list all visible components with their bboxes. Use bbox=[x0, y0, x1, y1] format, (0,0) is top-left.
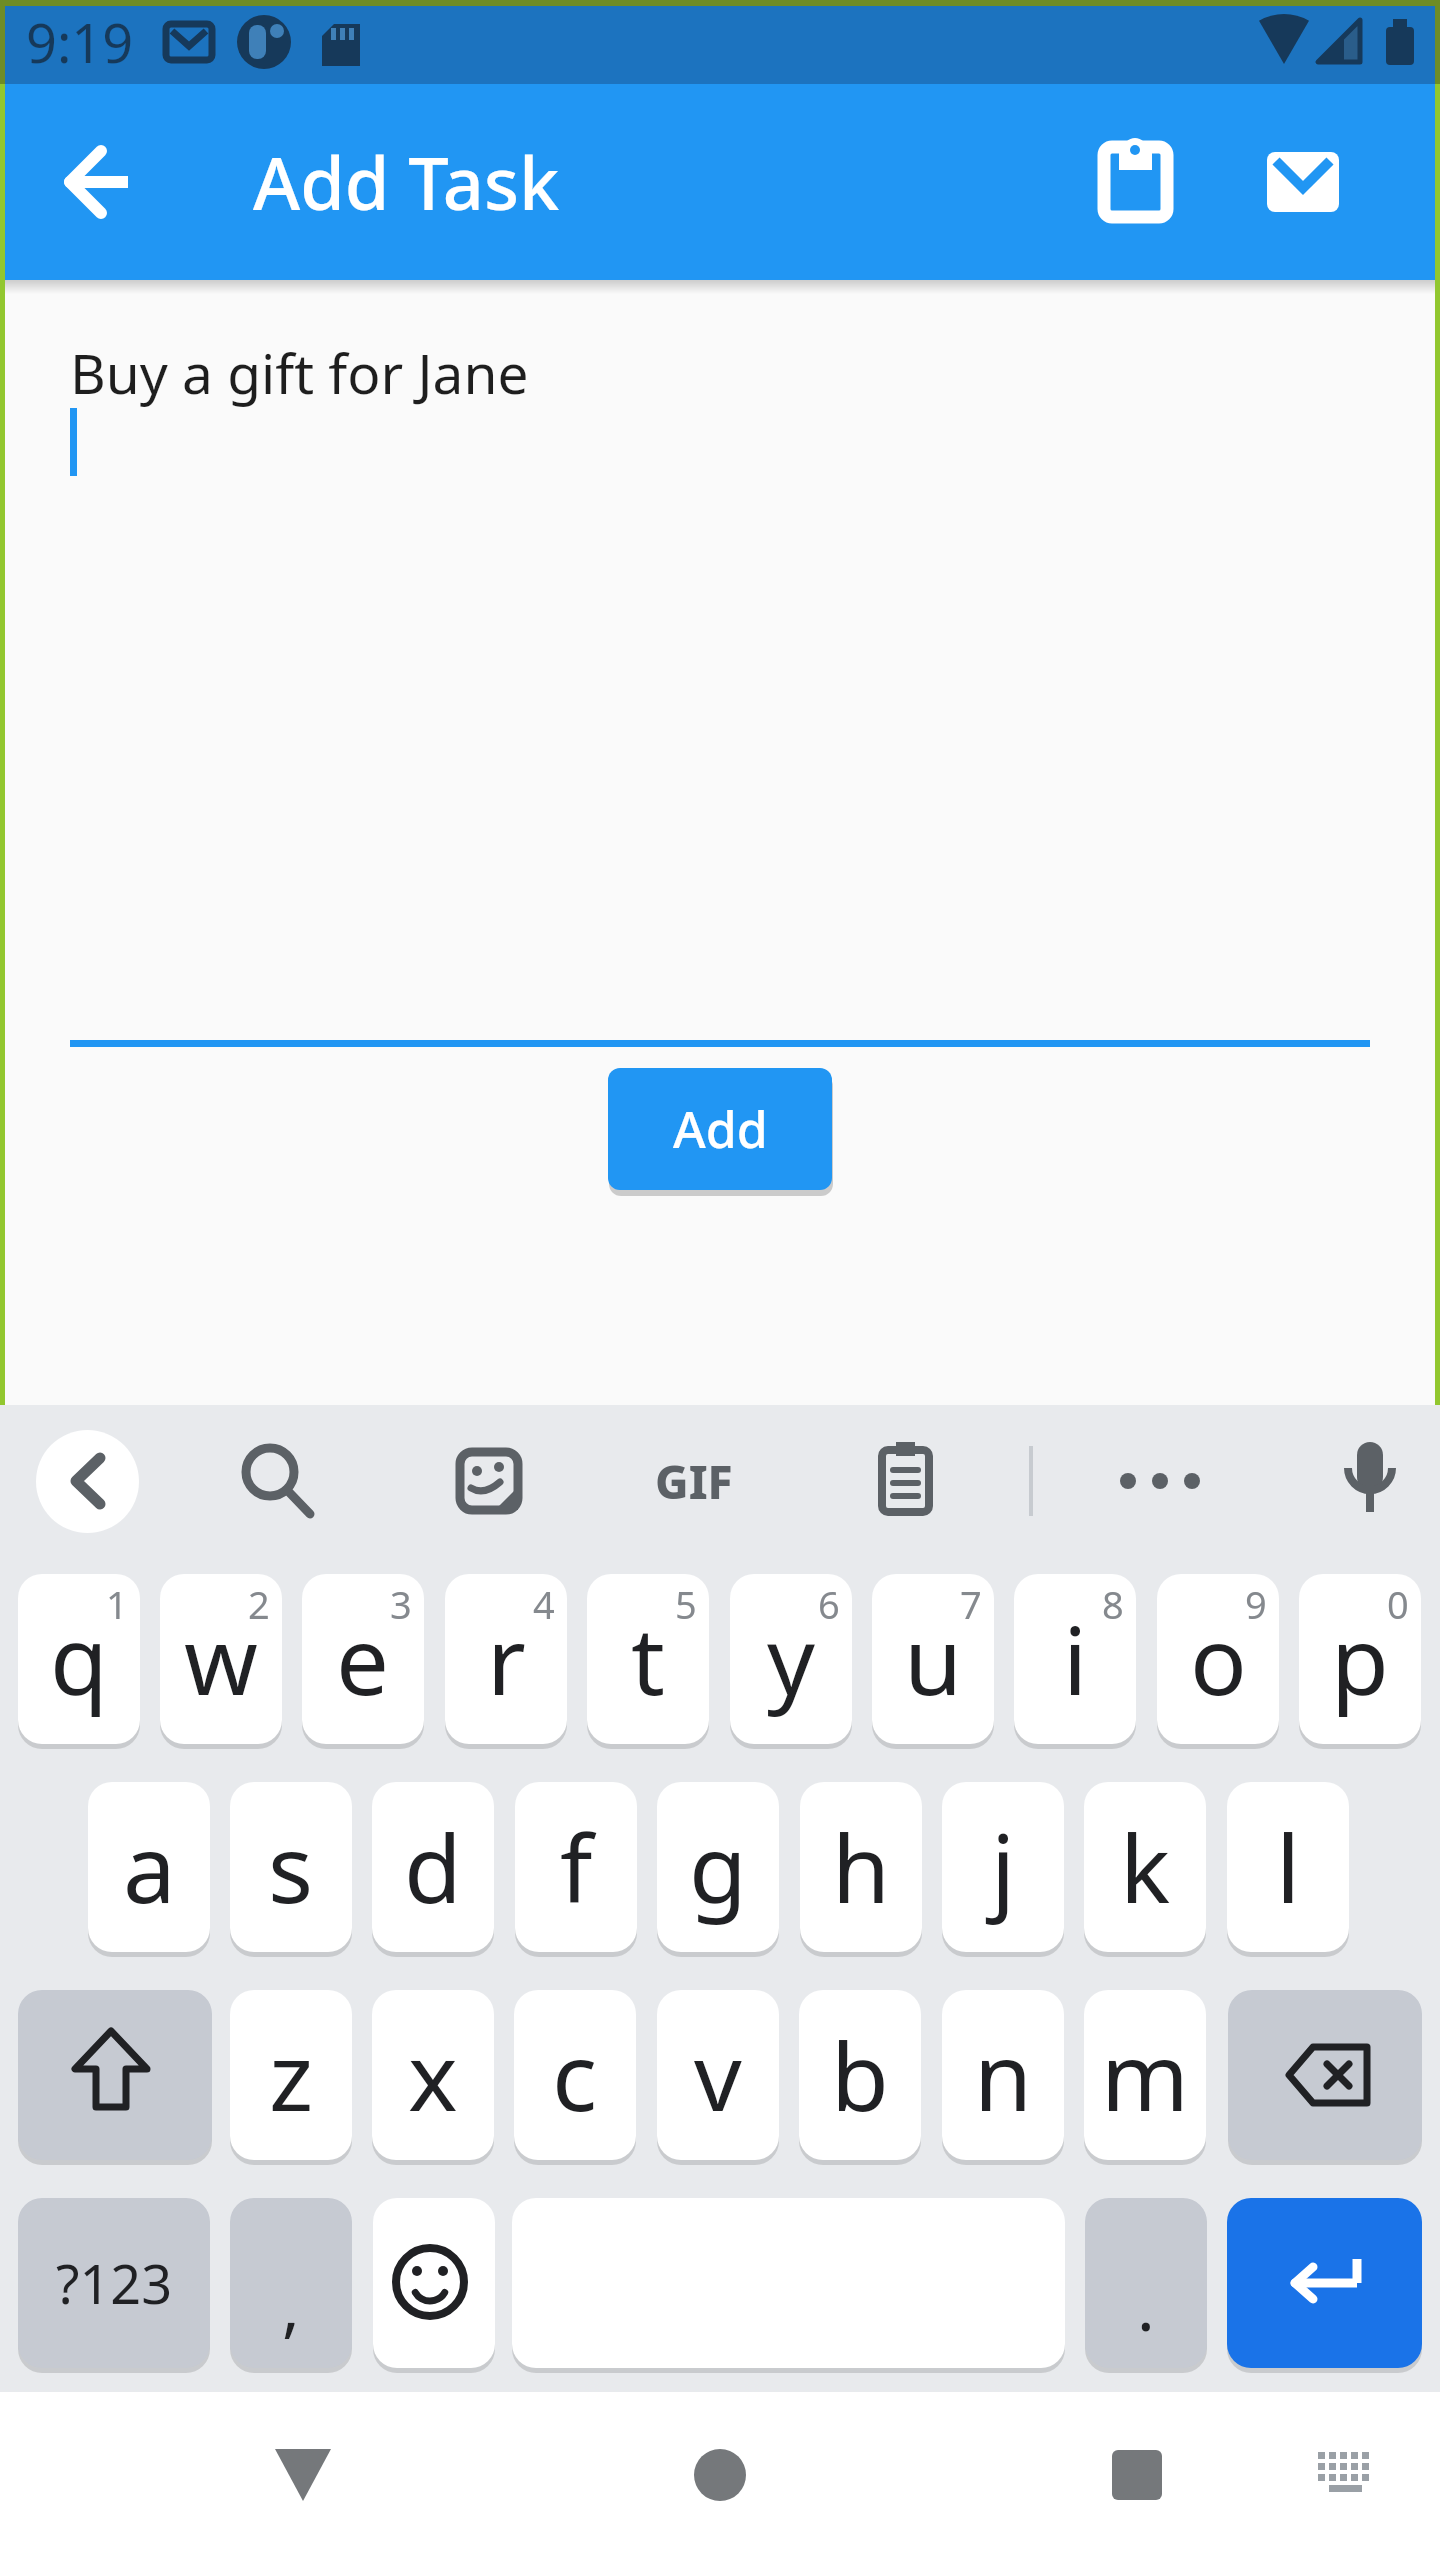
button[interactable]: . bbox=[1085, 2198, 1207, 2368]
staticText: m bbox=[1101, 2011, 1189, 2139]
button[interactable]: y bbox=[730, 1574, 852, 1744]
button[interactable]: l bbox=[1227, 1782, 1349, 1952]
button[interactable]: r bbox=[445, 1574, 567, 1744]
button[interactable] bbox=[1241, 120, 1365, 244]
button[interactable] bbox=[250, 2420, 360, 2530]
staticText: 9 bbox=[1245, 1578, 1267, 1630]
button[interactable]: v bbox=[657, 1990, 779, 2160]
staticText: l bbox=[1276, 1803, 1301, 1931]
staticText: 5 bbox=[675, 1578, 697, 1630]
button[interactable]: f bbox=[515, 1782, 637, 1952]
button[interactable]: k bbox=[1084, 1782, 1206, 1952]
staticText: b bbox=[831, 2011, 889, 2139]
staticText: 4 bbox=[533, 1578, 555, 1630]
staticText: 9:19 bbox=[26, 5, 134, 79]
staticText: i bbox=[1063, 1595, 1088, 1723]
button[interactable]: , bbox=[230, 2198, 352, 2368]
button[interactable]: s bbox=[230, 1782, 352, 1952]
staticText: g bbox=[689, 1803, 747, 1931]
button[interactable]: h bbox=[800, 1782, 922, 1952]
button[interactable] bbox=[1057, 2420, 1167, 2530]
button[interactable]: n bbox=[942, 1990, 1064, 2160]
staticText: p bbox=[1331, 1595, 1389, 1723]
staticText: 7 bbox=[960, 1578, 982, 1630]
staticText: 0 bbox=[1387, 1578, 1409, 1630]
button[interactable]: c bbox=[514, 1990, 636, 2160]
staticText: w bbox=[184, 1595, 258, 1723]
staticText: a bbox=[123, 1803, 176, 1931]
staticText: Add Task bbox=[253, 133, 560, 231]
staticText: ?123 bbox=[56, 2246, 173, 2320]
staticText: k bbox=[1120, 1803, 1171, 1931]
button[interactable] bbox=[665, 2420, 775, 2530]
staticText: Add bbox=[673, 1095, 768, 1163]
button[interactable]: q bbox=[18, 1574, 140, 1744]
staticText: , bbox=[282, 2260, 300, 2350]
button[interactable] bbox=[1073, 120, 1197, 244]
staticText: z bbox=[269, 2011, 314, 2139]
staticText: 3 bbox=[390, 1578, 412, 1630]
staticText: v bbox=[694, 2011, 742, 2139]
button[interactable]: o bbox=[1157, 1574, 1279, 1744]
button[interactable]: d bbox=[372, 1782, 494, 1952]
button[interactable] bbox=[18, 1990, 212, 2160]
staticText: . bbox=[1137, 2260, 1155, 2350]
button[interactable]: g bbox=[657, 1782, 779, 1952]
staticText: d bbox=[404, 1803, 462, 1931]
button[interactable] bbox=[36, 1430, 139, 1533]
staticText: h bbox=[832, 1803, 891, 1931]
button[interactable] bbox=[36, 120, 160, 244]
button[interactable]: ?123 bbox=[18, 2198, 210, 2368]
button[interactable] bbox=[1228, 1990, 1422, 2160]
staticText: y bbox=[767, 1595, 815, 1723]
button[interactable]: e bbox=[302, 1574, 424, 1744]
staticText: t bbox=[631, 1595, 665, 1723]
button[interactable]: a bbox=[88, 1782, 210, 1952]
button[interactable]: u bbox=[872, 1574, 994, 1744]
button[interactable]: j bbox=[942, 1782, 1064, 1952]
button[interactable]: Add bbox=[608, 1068, 832, 1190]
staticText: o bbox=[1190, 1595, 1247, 1723]
staticText: q bbox=[50, 1595, 108, 1723]
staticText: GIF bbox=[655, 1450, 733, 1513]
button[interactable]: b bbox=[799, 1990, 921, 2160]
staticText: u bbox=[904, 1595, 963, 1723]
staticText: 2 bbox=[248, 1578, 270, 1630]
staticText: 1 bbox=[106, 1578, 128, 1630]
button[interactable]: w bbox=[160, 1574, 282, 1744]
staticText: r bbox=[487, 1595, 526, 1723]
staticText: c bbox=[552, 2011, 598, 2139]
button[interactable]: z bbox=[230, 1990, 352, 2160]
staticText: n bbox=[974, 2011, 1033, 2139]
button[interactable]: i bbox=[1014, 1574, 1136, 1744]
button[interactable]: x bbox=[372, 1990, 494, 2160]
staticText: Buy a gift for Jane bbox=[70, 335, 529, 410]
button[interactable]: GIF bbox=[648, 1405, 740, 1557]
staticText: s bbox=[268, 1803, 314, 1931]
button[interactable] bbox=[373, 2198, 495, 2368]
staticText: j bbox=[991, 1803, 1016, 1931]
button[interactable]: m bbox=[1084, 1990, 1206, 2160]
staticText: f bbox=[560, 1803, 593, 1931]
button[interactable] bbox=[1227, 2198, 1422, 2368]
staticText: 8 bbox=[1102, 1578, 1124, 1630]
staticText: 6 bbox=[818, 1578, 840, 1630]
button[interactable]: t bbox=[587, 1574, 709, 1744]
button[interactable]: p bbox=[1299, 1574, 1421, 1744]
staticText: e bbox=[336, 1595, 390, 1723]
staticText: x bbox=[408, 2011, 458, 2139]
